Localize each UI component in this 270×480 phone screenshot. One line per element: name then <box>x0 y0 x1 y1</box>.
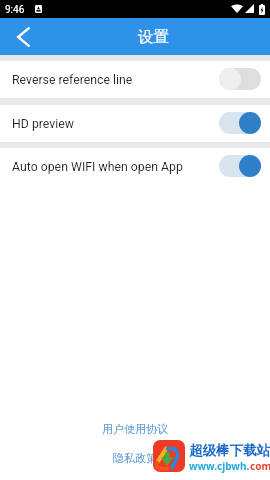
button[interactable]: 用户使用协议 <box>92 418 178 440</box>
staticText: 9:46 <box>5 4 25 16</box>
staticText: 设置 <box>138 27 169 47</box>
button[interactable]: 隐私政策 <box>103 447 167 469</box>
button[interactable]: Auto open WIFI when open App <box>0 148 270 185</box>
button[interactable]: Back <box>0 18 40 55</box>
staticText: Reverse reference line <box>12 73 133 87</box>
staticText: 用户使用协议 <box>102 422 168 436</box>
staticText: com <box>250 459 270 473</box>
staticText: HD preview <box>12 117 75 131</box>
staticText: www.cjbwh. <box>189 459 250 473</box>
staticText: 超级棒下载站 <box>189 442 270 459</box>
staticText: Auto open WIFI when open App <box>12 160 183 174</box>
button[interactable]: HD preview <box>0 105 270 142</box>
button[interactable]: Reverse reference line <box>0 61 270 98</box>
staticText: 隐私政策 <box>113 451 157 465</box>
